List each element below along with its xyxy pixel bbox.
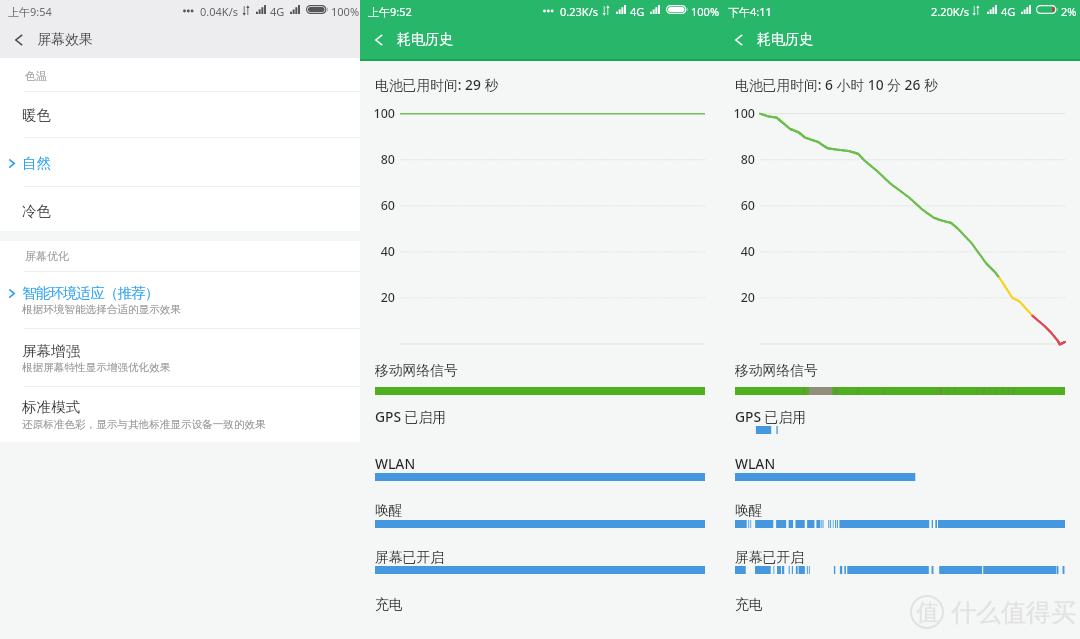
staticText: 40 xyxy=(720,243,755,260)
staticText: GPS 已启用 xyxy=(735,407,807,426)
staticText: 60 xyxy=(360,197,395,214)
button[interactable]: Back xyxy=(360,21,397,59)
staticText: 电池已用时间: 29 秒 xyxy=(375,75,499,94)
staticText: GPS 已启用 xyxy=(375,407,447,426)
button[interactable]: 暖色 xyxy=(0,93,360,137)
staticText: 屏幕增强 xyxy=(22,342,80,360)
button[interactable]: 自然 xyxy=(0,141,360,185)
button[interactable] xyxy=(0,383,360,431)
staticText: 0.23K/s xyxy=(560,4,598,19)
staticText: 屏幕效果 xyxy=(37,31,93,49)
staticText: 80 xyxy=(720,151,755,168)
button[interactable]: 冷色 xyxy=(0,189,360,233)
staticText: 屏幕已开启 xyxy=(735,549,804,566)
staticText: 充电 xyxy=(735,596,763,613)
button[interactable] xyxy=(0,269,360,317)
staticText: 耗电历史 xyxy=(397,31,453,49)
staticText: 移动网络信号 xyxy=(375,362,458,379)
staticText: 上午9:52 xyxy=(368,4,412,19)
staticText: 耗电历史 xyxy=(757,31,813,49)
staticText: 100% xyxy=(691,4,720,19)
staticText: 冷色 xyxy=(22,202,51,220)
button[interactable]: Back xyxy=(720,21,757,59)
staticText: 20 xyxy=(360,289,395,306)
staticText: 屏幕已开启 xyxy=(375,549,444,566)
staticText: 100 xyxy=(720,105,755,122)
staticText: 60 xyxy=(720,197,755,214)
staticText: 根据屏幕特性显示增强优化效果 xyxy=(22,361,171,374)
staticText: 色温 xyxy=(25,69,47,83)
staticText: 唤醒 xyxy=(375,502,403,519)
staticText: 唤醒 xyxy=(735,502,763,519)
staticText: 值 xyxy=(916,598,939,624)
staticText: 2.20K/s xyxy=(931,4,969,19)
staticText: 充电 xyxy=(375,596,403,613)
staticText: 40 xyxy=(360,243,395,260)
staticText: 屏幕优化 xyxy=(25,249,69,263)
staticText: 暖色 xyxy=(22,106,51,124)
staticText: 4G xyxy=(270,4,285,19)
staticText: 80 xyxy=(360,151,395,168)
staticText: 标准模式 xyxy=(22,398,80,416)
staticText: 智能环境适应（推荐） xyxy=(22,284,159,302)
staticText: 移动网络信号 xyxy=(735,362,818,379)
staticText: 0.04K/s xyxy=(200,4,238,19)
staticText: 电池已用时间: 6 小时 10 分 26 秒 xyxy=(735,75,938,94)
staticText: 20 xyxy=(720,289,755,306)
staticText: 根据环境智能选择合适的显示效果 xyxy=(22,303,181,316)
staticText: 自然 xyxy=(22,154,51,172)
button[interactable] xyxy=(0,327,360,375)
staticText: 什么值得买 xyxy=(951,597,1076,627)
staticText: WLAN xyxy=(735,454,776,473)
staticText: 2% xyxy=(1061,4,1077,19)
staticText: 下午4:11 xyxy=(728,4,772,19)
staticText: WLAN xyxy=(375,454,416,473)
staticText: 上午9:54 xyxy=(8,4,52,19)
staticText: 4G xyxy=(1001,4,1016,19)
staticText: 还原标准色彩，显示与其他标准显示设备一致的效果 xyxy=(22,418,266,431)
staticText: 100 xyxy=(360,105,395,122)
staticText: 100% xyxy=(331,4,360,19)
staticText: 4G xyxy=(630,4,645,19)
button[interactable]: Back xyxy=(0,22,37,58)
